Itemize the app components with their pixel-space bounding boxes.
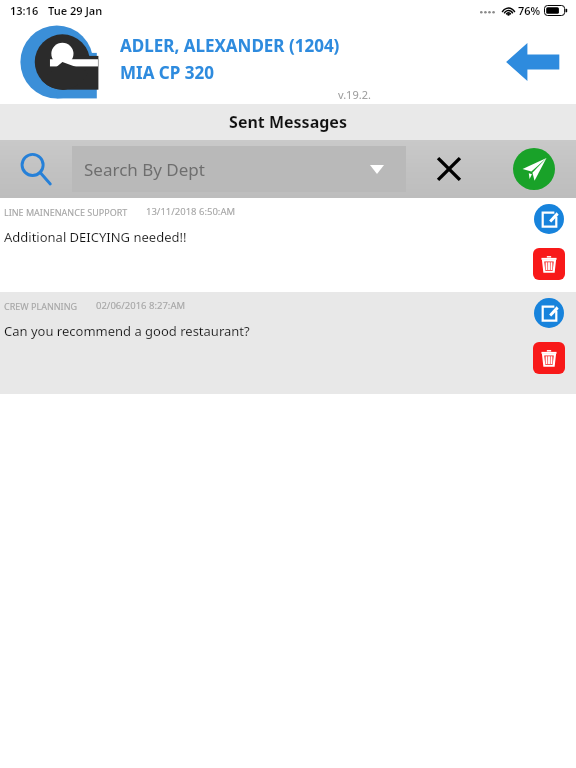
button[interactable]: Search	[0, 140, 72, 198]
staticText: 02/06/2016 8:27:AM	[96, 299, 186, 312]
button[interactable]: Edit message	[534, 298, 564, 328]
staticText: CREW PLANNING	[4, 300, 78, 312]
button[interactable]: Send message	[513, 148, 555, 190]
button[interactable]: Search By Dept	[72, 146, 406, 192]
staticText: v.19.2.	[338, 87, 371, 102]
staticText: 13:16	[10, 3, 39, 18]
button[interactable]: LINE MAINENANCE SUPPORT	[0, 198, 576, 292]
staticText: MIA CP 320	[120, 61, 214, 84]
staticText: 76%	[518, 3, 541, 18]
staticText: Search By Dept	[84, 158, 205, 181]
button[interactable]: Back	[502, 36, 564, 88]
button[interactable]: Edit message	[534, 204, 564, 234]
staticText: Can you recommend a good restaurant?	[4, 322, 250, 340]
button[interactable]: Delete message	[533, 342, 565, 374]
button[interactable]: Delete message	[533, 248, 565, 280]
staticText: Sent Messages	[229, 111, 347, 133]
button[interactable]: CREW PLANNING	[0, 292, 576, 394]
button[interactable]: Clear	[406, 140, 492, 198]
staticText: ADLER, ALEXANDER (1204)	[120, 34, 340, 57]
staticText: 13/11/2018 6:50:AM	[146, 205, 236, 218]
staticText: Additional DEICYING needed!!	[4, 228, 187, 246]
staticText: LINE MAINENANCE SUPPORT	[4, 206, 128, 218]
staticText: Tue 29 Jan	[48, 3, 103, 18]
